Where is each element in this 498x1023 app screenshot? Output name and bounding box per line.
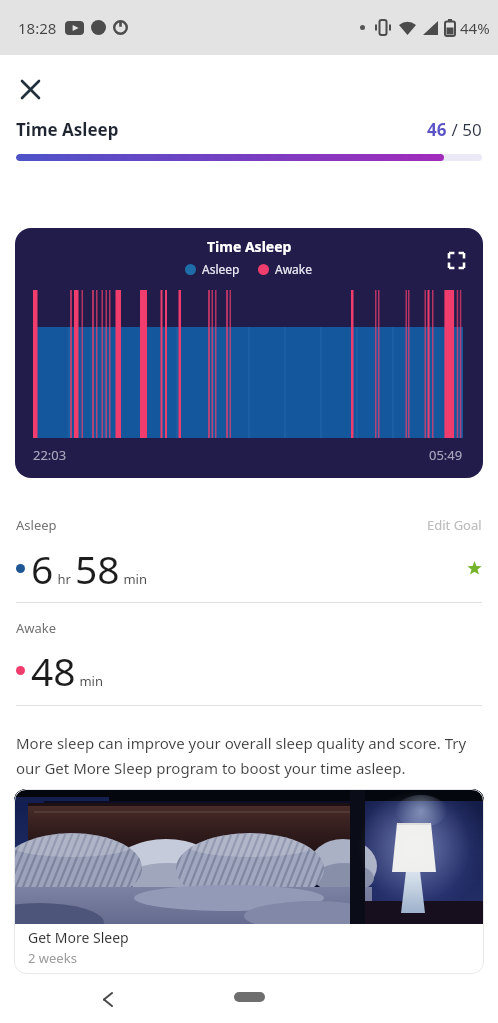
staticText: 18:28 <box>18 18 57 38</box>
staticText: 22:03 <box>33 446 67 464</box>
button[interactable] <box>234 992 265 1002</box>
staticText: Time Asleep <box>16 118 119 141</box>
staticText: Get More Sleep <box>28 928 129 947</box>
button[interactable]: Edit Goal <box>427 516 482 534</box>
staticText: Time Asleep <box>207 237 292 256</box>
staticText: Asleep <box>202 261 240 277</box>
staticText: min <box>76 672 103 690</box>
staticText: 05:49 <box>429 446 463 464</box>
staticText: 46 <box>427 118 447 141</box>
staticText: 2 weeks <box>28 949 77 967</box>
staticText: 58 <box>75 542 120 595</box>
staticText: 6 <box>31 542 54 595</box>
staticText: hr <box>54 570 75 588</box>
staticText: More sleep can improve your overall slee… <box>16 733 467 778</box>
staticText: 48 <box>31 644 76 697</box>
button[interactable] <box>92 983 124 1015</box>
staticText: min <box>120 570 147 588</box>
staticText: Asleep <box>16 516 57 534</box>
staticText: / 50 <box>447 118 482 141</box>
staticText: Awake <box>275 261 313 277</box>
staticText: 44% <box>460 18 490 38</box>
button[interactable] <box>16 75 44 103</box>
staticText: Awake <box>16 619 57 637</box>
button[interactable]: Get More Sleep <box>14 789 484 974</box>
button[interactable]: Time Asleep <box>15 228 483 478</box>
